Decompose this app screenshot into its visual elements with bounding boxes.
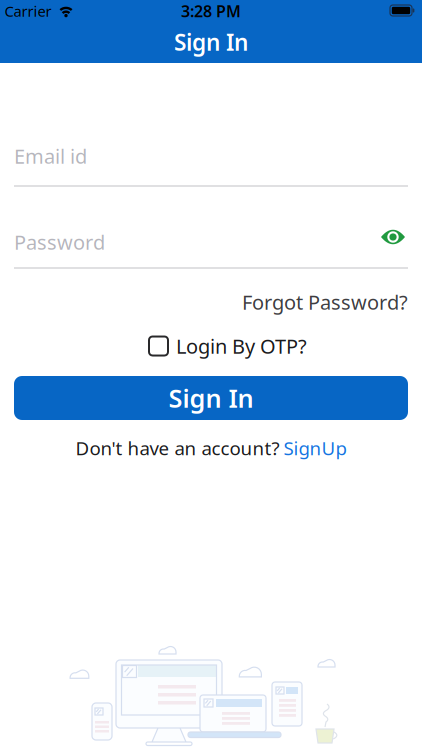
staticText: Sign In	[174, 27, 248, 57]
staticText: Carrier	[4, 1, 51, 21]
button[interactable]: Sign In	[14, 376, 408, 420]
staticText: Email id	[14, 143, 87, 169]
staticText: Forgot Password?	[242, 289, 408, 315]
staticText: Login By OTP?	[176, 333, 307, 359]
staticText: SignUp	[283, 436, 346, 460]
button[interactable]: Login By OTP?	[149, 333, 307, 359]
staticText: Sign In	[168, 381, 253, 415]
staticText: Don't have an account?	[75, 436, 279, 460]
button[interactable]: SignUp	[283, 436, 346, 460]
button[interactable]: Forgot Password?	[242, 289, 408, 315]
button[interactable]: Show password	[380, 229, 405, 245]
staticText: Password	[14, 229, 105, 255]
staticText: 3:28 PM	[181, 0, 241, 22]
